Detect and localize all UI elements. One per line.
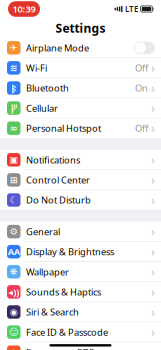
staticText: ◉ [10,307,18,317]
button[interactable]: ❋ [0,262,161,282]
staticText: Off [135,62,148,74]
staticText: ⚙ [10,226,18,237]
staticText: General [26,225,60,238]
staticText: Cellular [26,102,58,114]
button[interactable]: ▣ [0,150,161,170]
button[interactable]: ! [0,342,161,350]
staticText: › [151,120,155,136]
staticText: › [151,80,155,96]
button[interactable]: ∞ [0,118,161,138]
staticText: › [151,324,155,340]
button[interactable]: ☾ [0,190,161,210]
staticText: ◂)) [8,286,19,298]
button[interactable]: ≋ [0,58,161,78]
button[interactable]: ⚙ [0,222,161,241]
staticText: › [151,100,155,116]
button[interactable]: AA [0,242,161,261]
staticText: ❋ [10,266,18,277]
staticText: › [151,172,155,188]
staticText: ✈ [10,42,18,53]
staticText: ☾ [10,195,18,205]
staticText: Wi-Fi [26,62,47,74]
staticText: ▣ [9,154,18,165]
button[interactable]: ⊞ [0,170,161,190]
staticText: Sounds & Haptics [26,286,101,298]
button[interactable]: ᚠ [0,98,161,118]
button[interactable]: ◉ [0,302,161,322]
staticText: Display & Brightness [26,245,114,258]
staticText: Emergency SOS [26,346,94,350]
staticText: Wallpaper [26,266,69,278]
staticText: Airplane Mode [26,42,89,54]
staticText: ᛒ [11,82,16,94]
button[interactable]: ☺ [0,322,161,342]
staticText: ᚠ [11,102,17,114]
staticText: LTE [125,4,138,14]
button[interactable]: ◂)) [0,282,161,302]
staticText: ≋ [10,63,18,73]
staticText: Control Center [26,174,90,186]
staticText: Personal Hotspot [26,122,101,134]
staticText: › [151,152,155,168]
button[interactable]: ✈ [0,38,161,58]
staticText: › [151,60,155,76]
staticText: Do Not Disturb [26,194,91,206]
staticText: On [135,82,148,94]
button[interactable]: ᛒ [0,78,161,98]
staticText: › [151,284,155,300]
staticText: Off [135,122,148,134]
staticText: ☺ [9,327,19,337]
staticText: › [151,244,155,260]
staticText: 10:39 [12,3,35,15]
staticText: ! [12,346,15,350]
staticText: › [151,264,155,280]
staticText: Bluetooth [26,82,69,94]
staticText: › [151,192,155,208]
staticText: ⊞ [10,175,18,185]
staticText: › [151,224,155,239]
staticText: AA [8,245,20,258]
staticText: ∞ [10,123,18,133]
staticText: Settings [55,20,105,36]
staticText: Face ID & Passcode [26,326,108,338]
staticText: › [151,304,155,320]
staticText: Siri & Search [26,306,79,318]
staticText: Notifications [26,154,80,166]
